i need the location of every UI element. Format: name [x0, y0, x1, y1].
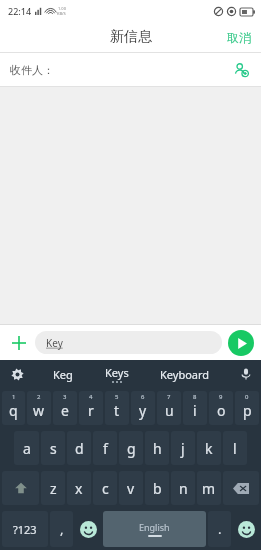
staticText: x	[75, 479, 83, 498]
button[interactable]: Voice input	[236, 364, 256, 384]
staticText: z	[50, 479, 57, 498]
staticText: l	[233, 439, 237, 458]
button[interactable]: Emoji	[233, 511, 259, 547]
staticText: .	[218, 520, 222, 538]
staticText: 3	[63, 393, 67, 401]
staticText: t	[114, 401, 120, 420]
button[interactable]: o	[209, 391, 233, 425]
staticText: f	[103, 439, 108, 458]
button[interactable]: e	[53, 391, 77, 425]
staticText: q	[9, 401, 18, 420]
staticText: Keyboard	[160, 367, 210, 382]
button[interactable]: Key	[35, 331, 222, 354]
button[interactable]: y	[131, 391, 155, 425]
staticText: 4	[89, 393, 93, 401]
button[interactable]: Shift	[2, 471, 39, 505]
staticText: b	[153, 479, 162, 498]
staticText: 新信息	[110, 28, 152, 46]
button[interactable]: 取消	[217, 24, 261, 51]
button[interactable]: b	[145, 471, 169, 505]
button[interactable]: l	[223, 431, 247, 465]
button[interactable]: Space	[103, 511, 206, 547]
staticText: c	[102, 479, 109, 498]
staticText: Keys	[105, 365, 129, 380]
staticText: Keg	[53, 367, 73, 382]
staticText: 收件人：	[10, 63, 54, 77]
button[interactable]: .	[208, 511, 231, 547]
button[interactable]: t	[105, 391, 129, 425]
button[interactable]: n	[171, 471, 195, 505]
staticText: Key	[46, 336, 63, 350]
staticText: m	[202, 479, 216, 498]
button[interactable]: z	[41, 471, 65, 505]
button[interactable]: d	[67, 431, 91, 465]
button[interactable]: f	[93, 431, 117, 465]
button[interactable]: i	[183, 391, 207, 425]
button[interactable]: ,	[50, 511, 73, 547]
staticText: 22:14	[8, 5, 32, 17]
staticText: w	[33, 401, 45, 420]
staticText: e	[61, 401, 69, 420]
staticText: 9	[219, 393, 223, 401]
staticText: 1.00	[58, 6, 66, 11]
button[interactable]: ?123	[2, 511, 48, 547]
button[interactable]: Keyboard	[156, 365, 214, 384]
staticText: ?123	[13, 522, 37, 537]
button[interactable]: Keg	[49, 365, 77, 384]
button[interactable]: w	[27, 391, 51, 425]
staticText: n	[179, 479, 188, 498]
button[interactable]: x	[67, 471, 91, 505]
button[interactable]: Keys	[101, 363, 133, 385]
button[interactable]: v	[119, 471, 143, 505]
button[interactable]: Send	[228, 330, 254, 356]
staticText: 0	[245, 393, 249, 401]
staticText: k	[205, 439, 213, 458]
staticText: v	[127, 479, 135, 498]
button[interactable]: 收件人：	[0, 53, 261, 86]
staticText: 5	[115, 393, 119, 401]
staticText: English	[139, 521, 170, 533]
button[interactable]: s	[41, 431, 65, 465]
button[interactable]: Backspace	[223, 471, 259, 505]
staticText: a	[23, 439, 31, 458]
staticText: p	[243, 401, 252, 420]
button[interactable]: Keyboard settings	[6, 363, 28, 385]
button[interactable]: r	[79, 391, 103, 425]
button[interactable]: Emoji	[75, 511, 101, 547]
button[interactable]: g	[119, 431, 143, 465]
button[interactable]: c	[93, 471, 117, 505]
staticText: 6	[141, 393, 145, 401]
staticText: r	[88, 401, 94, 420]
staticText: y	[139, 401, 147, 420]
staticText: 7	[167, 393, 171, 401]
staticText: 取消	[227, 30, 251, 45]
staticText: 8	[193, 393, 197, 401]
staticText: 1	[12, 393, 16, 401]
staticText: i	[193, 401, 197, 420]
staticText: o	[217, 401, 226, 420]
button[interactable]: Add attachment	[7, 331, 31, 355]
button[interactable]: a	[14, 431, 39, 465]
button[interactable]: q	[2, 391, 25, 425]
staticText: u	[165, 401, 174, 420]
staticText: ,	[60, 520, 64, 538]
staticText: s	[50, 439, 57, 458]
button[interactable]: Add recipient	[231, 60, 251, 80]
button[interactable]: u	[157, 391, 181, 425]
staticText: KB/S	[57, 11, 66, 16]
button[interactable]: j	[171, 431, 195, 465]
staticText: j	[181, 439, 185, 458]
button[interactable]: k	[197, 431, 221, 465]
button[interactable]: m	[197, 471, 221, 505]
staticText: d	[75, 439, 84, 458]
staticText: g	[127, 439, 136, 458]
staticText: 2	[37, 393, 41, 401]
button[interactable]: h	[145, 431, 169, 465]
staticText: h	[153, 439, 162, 458]
button[interactable]: p	[235, 391, 259, 425]
